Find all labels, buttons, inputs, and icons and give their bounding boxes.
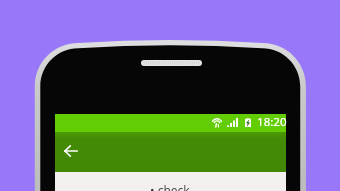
staticText: 18:20 (257, 114, 287, 130)
button[interactable]: • check (60, 180, 281, 191)
staticText: • check (150, 182, 190, 191)
button[interactable]: Back (57, 137, 85, 165)
